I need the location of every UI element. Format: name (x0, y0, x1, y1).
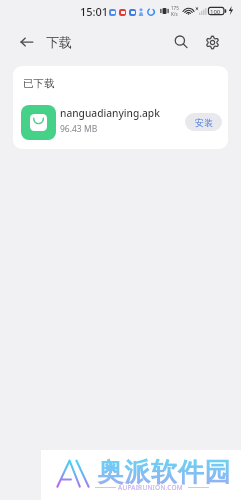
button[interactable]: Settings (199, 29, 225, 55)
staticText: K/s (171, 11, 178, 17)
button[interactable]: App icon (13, 103, 228, 141)
staticText: 已下载 (23, 77, 55, 90)
button[interactable]: Back (14, 29, 40, 55)
staticText: 安装 (195, 117, 213, 128)
staticText: AUPAIRUNION.COM (118, 483, 183, 492)
staticText: nanguadianying.apk (60, 106, 160, 120)
staticText: 100 (210, 8, 221, 16)
other: App icon (21, 105, 56, 140)
button[interactable]: Search (168, 29, 194, 55)
button[interactable]: 安装 (185, 113, 222, 131)
staticText: 175 (171, 5, 179, 11)
staticText: 96.43 MB (60, 123, 98, 135)
staticText: 奥派软件园 (97, 456, 231, 489)
staticText: 15:01 (80, 4, 109, 19)
staticText: 下载 (46, 34, 72, 50)
